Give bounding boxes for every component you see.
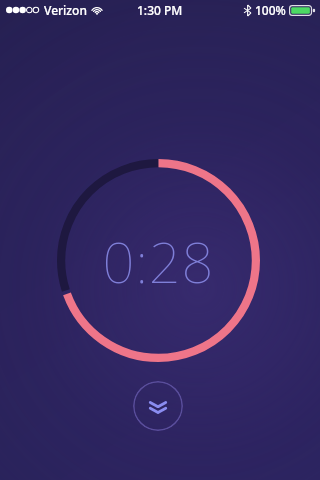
staticText: 1:30 PM [137,2,183,18]
staticText: Verizon [44,2,87,18]
staticText: 100% [255,2,286,18]
button[interactable]: Collapse [133,381,183,431]
staticText: 0:28 [102,223,215,299]
